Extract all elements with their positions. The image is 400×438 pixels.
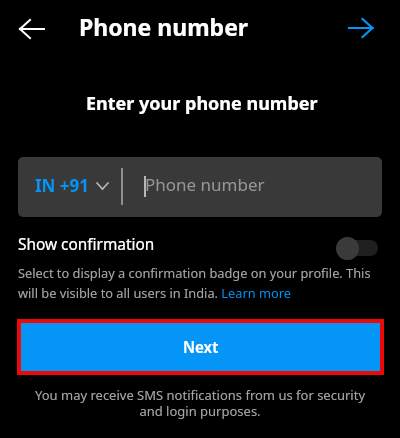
button[interactable]: Show confirmation bbox=[18, 230, 155, 258]
button[interactable]: Learn more bbox=[221, 285, 290, 301]
button[interactable]: IN +91 bbox=[18, 157, 121, 217]
staticText: Phone number bbox=[145, 173, 265, 196]
button[interactable]: Show confirmation toggle bbox=[336, 236, 378, 260]
staticText: Next bbox=[183, 337, 219, 358]
button[interactable]: Back bbox=[12, 9, 52, 49]
staticText: Show confirmation bbox=[18, 234, 155, 255]
staticText: You may receive SMS notifications from u… bbox=[30, 386, 370, 420]
button[interactable]: Phone number bbox=[123, 157, 382, 217]
staticText: Enter your phone number bbox=[86, 91, 318, 116]
staticText: IN +91 bbox=[35, 174, 90, 197]
staticText: Phone number bbox=[79, 11, 249, 42]
staticText: Select to display a confirmation badge o… bbox=[18, 264, 378, 301]
button[interactable]: Next bbox=[21, 323, 380, 371]
button[interactable]: Next bbox=[341, 8, 381, 48]
